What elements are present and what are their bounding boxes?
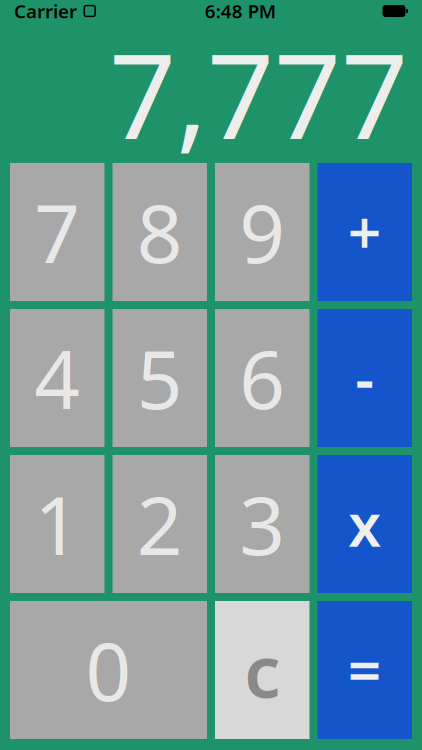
button[interactable]: x	[317, 455, 412, 593]
staticText: 2	[137, 471, 183, 577]
button[interactable]: -	[317, 309, 412, 447]
button[interactable]: 3	[215, 455, 309, 593]
staticText: 1	[34, 471, 80, 577]
staticText: 7,777	[109, 15, 408, 171]
staticText: 5	[137, 325, 183, 431]
button[interactable]: =	[317, 601, 412, 739]
button[interactable]: 9	[215, 163, 309, 301]
staticText: -	[355, 339, 374, 417]
staticText: 9	[239, 179, 285, 285]
button[interactable]: c	[215, 601, 309, 739]
button[interactable]: 5	[112, 309, 207, 447]
staticText: 0	[85, 617, 131, 723]
button[interactable]: 4	[10, 309, 104, 447]
staticText: 8	[137, 179, 183, 285]
button[interactable]: 6	[215, 309, 309, 447]
staticText: +	[348, 193, 382, 271]
button[interactable]: 0	[10, 601, 207, 739]
staticText: 7	[34, 179, 80, 285]
button[interactable]: +	[317, 163, 412, 301]
staticText: Carrier	[14, 0, 77, 23]
button[interactable]: 2	[112, 455, 207, 593]
staticText: 6	[239, 325, 285, 431]
button[interactable]: 1	[10, 455, 104, 593]
staticText: 6:48 PM	[205, 0, 276, 23]
staticText: c	[244, 622, 280, 718]
staticText: 4	[34, 325, 80, 431]
staticText: =	[348, 631, 382, 709]
staticText: 3	[239, 471, 285, 577]
staticText: x	[348, 485, 381, 563]
button[interactable]: 7	[10, 163, 104, 301]
button[interactable]: 8	[112, 163, 207, 301]
